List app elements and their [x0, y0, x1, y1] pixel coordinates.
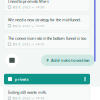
button[interactable]: I need to promote Mars	[4, 0, 90, 12]
staticText: We need a new strategy for the mid funne…	[8, 17, 81, 22]
staticText: Sep 8, 2025 — 14:36	[13, 96, 45, 100]
button[interactable]: Note options	[4, 52, 20, 68]
staticText: Sep 8, 2025 — 14:36	[13, 5, 45, 9]
button[interactable]: The conversion rate in the bottom funnel…	[4, 33, 90, 49]
staticText: The conversion rate in the bottom funnel…	[8, 36, 86, 41]
button[interactable]: +	[41, 55, 95, 66]
button[interactable]: We need a new strategy for the mid funne…	[4, 14, 90, 30]
staticText: Add note to section	[51, 58, 90, 63]
staticText: Sep 8, 2025 — 14:36	[13, 24, 45, 27]
staticText: +	[46, 57, 49, 64]
staticText: Exiting still wants milk.	[8, 90, 47, 95]
button[interactable]: private	[4, 74, 90, 84]
staticText: private	[14, 76, 28, 82]
button[interactable]: Exiting still wants milk.	[4, 87, 90, 100]
staticText: Sep 8, 2025 — 14:36	[13, 42, 45, 46]
staticText: I need to promote Mars	[8, 0, 49, 4]
